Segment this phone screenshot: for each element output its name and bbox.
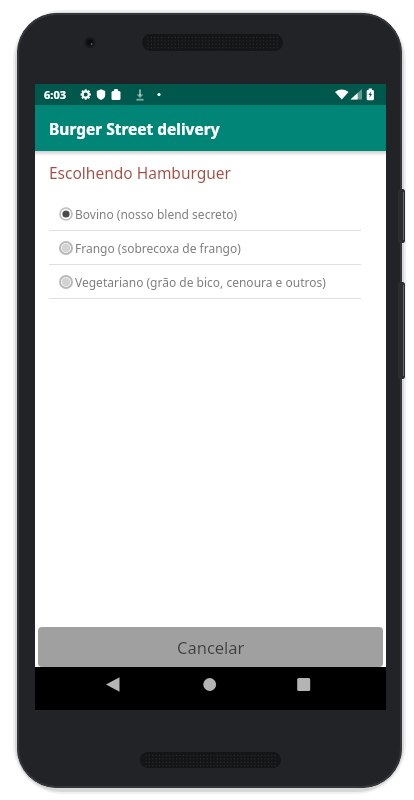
button[interactable]: Bovino (nosso blend secreto) [35,197,386,230]
button[interactable] [269,667,386,710]
staticText: 6:03 [44,87,66,102]
staticText: Frango (sobrecoxa de frango) [75,240,241,256]
staticText: Bovino (nosso blend secreto) [75,206,238,222]
staticText: Escolhendo Hamburguer [49,162,231,183]
staticText: Vegetariano (grão de bico, cenoura e out… [75,274,326,290]
button[interactable]: Cancelar [38,627,383,667]
button[interactable]: Vegetariano (grão de bico, cenoura e out… [35,265,386,298]
staticText: Cancelar [177,636,245,658]
staticText: Burger Street delivery [49,118,220,139]
button[interactable] [35,667,152,710]
button[interactable] [152,667,269,710]
button[interactable]: Frango (sobrecoxa de frango) [35,231,386,264]
